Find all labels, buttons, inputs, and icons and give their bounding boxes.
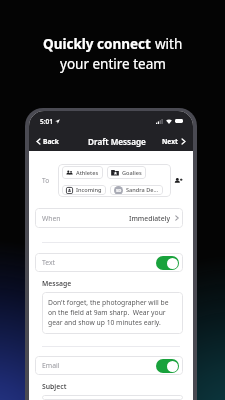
button[interactable]: Back: [29, 134, 62, 149]
button[interactable]: Next: [159, 134, 193, 149]
staticText: Don't forget, the photographer will be o…: [48, 298, 177, 327]
staticText: Athletes: [76, 169, 99, 177]
button[interactable]: SD: [110, 185, 163, 195]
button[interactable]: Incoming: [62, 185, 106, 195]
staticText: Subject: [42, 382, 67, 391]
staticText: Immediately: [129, 214, 171, 223]
staticText: Sandra De...: [126, 186, 159, 194]
staticText: Message: [42, 279, 72, 288]
staticText: When: [42, 214, 61, 223]
staticText: Next: [162, 137, 178, 146]
button[interactable]: Add recipient: [172, 175, 185, 187]
button[interactable]: Athletes: [62, 166, 103, 179]
button[interactable]: Email: [35, 356, 183, 375]
staticText: Incoming: [76, 186, 102, 194]
staticText: SD: [116, 188, 122, 194]
button[interactable]: When: [35, 208, 183, 228]
staticText: Text: [42, 258, 56, 267]
staticText: with: [155, 35, 183, 53]
staticText: Goalies: [122, 169, 142, 177]
staticText: Back: [43, 137, 59, 146]
staticText: To: [42, 176, 50, 185]
staticText: your entire team: [60, 55, 166, 73]
staticText: Draft Message: [88, 136, 146, 147]
staticText: Email: [42, 361, 60, 370]
button[interactable]: Text: [35, 253, 183, 272]
staticText: 5:01: [40, 117, 53, 126]
button[interactable]: Goalies: [107, 166, 146, 179]
staticText: Quickly connect: [43, 35, 155, 53]
